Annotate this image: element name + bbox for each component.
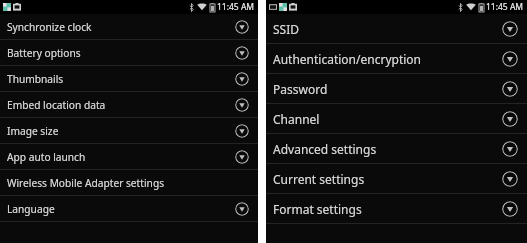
button[interactable]: Expand Channel: [502, 111, 518, 127]
button[interactable]: Expand Embed location data: [235, 98, 249, 112]
staticText: Password: [273, 81, 502, 97]
staticText: Current settings: [273, 171, 502, 187]
button[interactable]: Expand Current settings: [502, 171, 518, 187]
staticText: Synchronize clock: [7, 20, 235, 34]
button[interactable]: Image size: [0, 118, 258, 143]
button[interactable]: Expand Language: [235, 202, 249, 216]
button[interactable]: Wireless Mobile Adapter settings: [0, 170, 258, 195]
button[interactable]: Language: [0, 196, 258, 221]
button[interactable]: Expand Synchronize clock: [235, 20, 249, 34]
button[interactable]: Embed location data: [0, 92, 258, 117]
button[interactable]: SSID: [266, 14, 527, 43]
button[interactable]: Battery options: [0, 40, 258, 65]
button[interactable]: Format settings: [266, 194, 527, 223]
button[interactable]: Expand Format settings: [502, 201, 518, 217]
button[interactable]: Current settings: [266, 164, 527, 193]
button[interactable]: Expand Password: [502, 81, 518, 97]
button[interactable]: Expand Battery options: [235, 46, 249, 60]
staticText: Advanced settings: [273, 141, 502, 157]
staticText: Format settings: [273, 201, 502, 217]
button[interactable]: Channel: [266, 104, 527, 133]
staticText: Authentication/encryption: [273, 51, 502, 67]
staticText: Language: [7, 202, 235, 216]
staticText: Channel: [273, 111, 502, 127]
button[interactable]: Advanced settings: [266, 134, 527, 163]
button[interactable]: App auto launch: [0, 144, 258, 169]
button[interactable]: Authentication/encryption: [266, 44, 527, 73]
staticText: App auto launch: [7, 150, 235, 164]
button[interactable]: Expand Thumbnails: [235, 72, 249, 86]
button[interactable]: Synchronize clock: [0, 14, 258, 39]
button[interactable]: Expand Image size: [235, 124, 249, 138]
button[interactable]: Thumbnails: [0, 66, 258, 91]
staticText: Thumbnails: [7, 72, 235, 86]
staticText: Image size: [7, 124, 235, 138]
staticText: 11:45 AM: [486, 1, 524, 13]
button[interactable]: Expand Advanced settings: [502, 141, 518, 157]
staticText: Battery options: [7, 46, 235, 60]
button[interactable]: Expand App auto launch: [235, 150, 249, 164]
button[interactable]: Password: [266, 74, 527, 103]
staticText: 11:45 AM: [217, 1, 255, 13]
staticText: Wireless Mobile Adapter settings: [7, 176, 235, 190]
button[interactable]: Expand Authentication/encryption: [502, 51, 518, 67]
button[interactable]: Expand SSID: [502, 21, 518, 37]
staticText: Embed location data: [7, 98, 235, 112]
staticText: SSID: [273, 21, 502, 37]
